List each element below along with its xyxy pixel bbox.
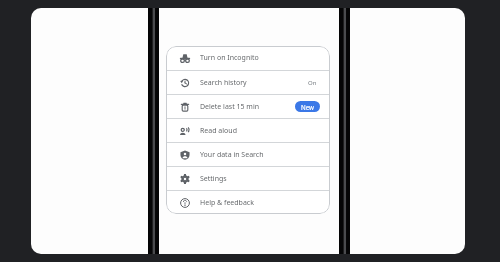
button[interactable]: Settings [166,167,330,190]
button[interactable]: Search history [166,71,330,94]
staticText: On [308,79,317,87]
button[interactable]: Help & feedback [166,191,330,214]
button[interactable]: New [295,101,320,112]
staticText: Read aloud [200,126,237,136]
staticText: Help & feedback [200,198,254,208]
button[interactable]: Delete last 15 min [166,95,330,118]
staticText: Search history [200,78,247,88]
staticText: Delete last 15 min [200,102,260,112]
button[interactable]: Read aloud [166,119,330,142]
staticText: Your data in Search [200,150,264,160]
button[interactable]: Your data in Search [166,143,330,166]
staticText: Turn on Incognito [200,53,259,63]
staticText: Settings [200,174,227,184]
button[interactable]: Turn on Incognito [166,46,330,70]
staticText: New [301,103,314,111]
